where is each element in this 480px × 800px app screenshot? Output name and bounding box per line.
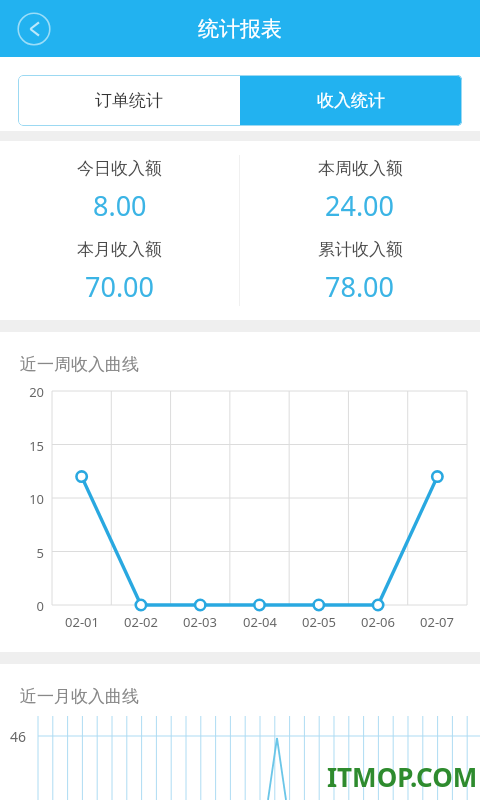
staticText: 5 <box>14 544 44 562</box>
staticText: ITMOP.COM <box>327 759 478 794</box>
staticText: 02-05 <box>291 613 347 631</box>
staticText: 近一周收入曲线 <box>20 354 139 375</box>
staticText: 本周收入额 <box>318 158 403 179</box>
staticText: 70.00 <box>85 268 155 305</box>
staticText: 02-06 <box>350 613 406 631</box>
staticText: 订单统计 <box>95 90 163 111</box>
staticText: 02-03 <box>172 613 228 631</box>
staticText: 8.00 <box>93 187 147 224</box>
staticText: 20 <box>14 383 44 401</box>
staticText: 46 <box>10 727 27 746</box>
staticText: 02-01 <box>54 613 110 631</box>
staticText: 15 <box>14 437 44 455</box>
staticText: 收入统计 <box>317 90 385 111</box>
staticText: 近一月收入曲线 <box>20 686 139 707</box>
staticText: 0 <box>14 597 44 615</box>
staticText: 02-04 <box>232 613 288 631</box>
staticText: 78.00 <box>325 268 395 305</box>
staticText: 累计收入额 <box>318 239 403 260</box>
staticText: 今日收入额 <box>77 158 162 179</box>
staticText: 10 <box>14 490 44 508</box>
staticText: 02-02 <box>113 613 169 631</box>
button[interactable]: Back <box>16 11 52 47</box>
staticText: 统计报表 <box>198 16 282 42</box>
staticText: 本月收入额 <box>77 239 162 260</box>
staticText: 02-07 <box>409 613 465 631</box>
button[interactable]: 收入统计 <box>240 75 462 126</box>
staticText: 24.00 <box>325 187 395 224</box>
button[interactable]: 订单统计 <box>18 75 240 126</box>
